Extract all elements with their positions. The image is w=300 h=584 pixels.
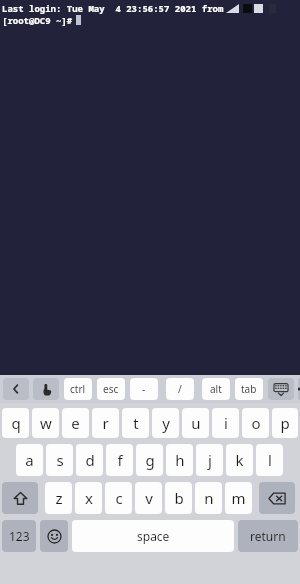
button[interactable]: q xyxy=(2,408,29,438)
staticText: space xyxy=(137,528,170,544)
staticText: s xyxy=(56,450,64,470)
staticText: z xyxy=(55,488,63,508)
button[interactable]: k xyxy=(226,444,253,476)
button[interactable]: Back xyxy=(3,378,29,400)
staticText: h xyxy=(175,450,185,470)
button[interactable]: x xyxy=(75,482,102,514)
staticText: alt xyxy=(210,382,222,396)
button[interactable]: Touch mode xyxy=(33,378,59,400)
staticText: ctrl xyxy=(70,382,86,396)
staticText: g xyxy=(145,450,155,470)
button[interactable]: i xyxy=(212,408,239,438)
button[interactable]: o xyxy=(242,408,269,438)
staticText: w xyxy=(40,413,52,433)
button[interactable]: space xyxy=(72,520,234,552)
button[interactable]: alt xyxy=(202,378,230,400)
button[interactable]: r xyxy=(92,408,119,438)
button[interactable]: f xyxy=(106,444,133,476)
button[interactable]: w xyxy=(32,408,59,438)
staticText: r xyxy=(102,413,109,433)
staticText: v xyxy=(145,488,153,508)
button[interactable]: / xyxy=(166,378,194,400)
staticText: - xyxy=(142,382,146,396)
button[interactable]: n xyxy=(195,482,222,514)
staticText: n xyxy=(204,488,214,508)
staticText: u xyxy=(191,413,201,433)
button[interactable]: Shift xyxy=(2,482,38,514)
staticText: d xyxy=(85,450,95,470)
button[interactable]: a xyxy=(16,444,43,476)
staticText: b xyxy=(174,488,184,508)
staticText: i xyxy=(224,413,228,433)
staticText: m xyxy=(231,488,246,508)
staticText: x xyxy=(85,488,93,508)
button[interactable]: d xyxy=(76,444,103,476)
button[interactable]: esc xyxy=(97,378,125,400)
staticText: [root@DC9 ~]# xyxy=(2,14,73,26)
button[interactable]: j xyxy=(196,444,223,476)
button[interactable]: g xyxy=(136,444,163,476)
staticText: esc xyxy=(103,382,119,396)
staticText: Last login: Tue May 4 23:56:57 2021 from xyxy=(2,2,224,14)
button[interactable]: y xyxy=(152,408,179,438)
button[interactable]: e xyxy=(62,408,89,438)
button[interactable]: Hide keyboard xyxy=(268,378,294,400)
button[interactable]: ctrl xyxy=(64,378,92,400)
staticText: j xyxy=(208,450,212,470)
staticText: / xyxy=(178,382,182,396)
button[interactable]: More options xyxy=(298,378,300,400)
staticText: t xyxy=(133,413,139,433)
button[interactable]: - xyxy=(130,378,158,400)
staticText: y xyxy=(162,413,170,433)
button[interactable]: t xyxy=(122,408,149,438)
staticText: 123 xyxy=(9,528,30,544)
staticText: l xyxy=(268,450,272,470)
button[interactable]: 123 xyxy=(2,520,36,552)
staticText: o xyxy=(251,413,261,433)
button[interactable]: u xyxy=(182,408,209,438)
staticText: a xyxy=(25,450,34,470)
button[interactable]: Emoji xyxy=(40,520,68,552)
button[interactable]: v xyxy=(135,482,162,514)
button[interactable]: z xyxy=(45,482,72,514)
button[interactable]: return xyxy=(238,520,298,552)
button[interactable]: p xyxy=(272,408,298,438)
staticText: return xyxy=(250,528,286,544)
staticText: p xyxy=(280,413,290,433)
staticText: f xyxy=(117,450,123,470)
button[interactable]: tab xyxy=(235,378,263,400)
button[interactable]: c xyxy=(105,482,132,514)
button[interactable]: b xyxy=(165,482,192,514)
staticText: c xyxy=(115,488,123,508)
staticText: k xyxy=(235,450,244,470)
button[interactable]: l xyxy=(256,444,283,476)
button[interactable]: m xyxy=(225,482,252,514)
button[interactable]: Backspace xyxy=(259,482,295,514)
staticText: tab xyxy=(241,382,257,396)
button[interactable]: s xyxy=(46,444,73,476)
button[interactable]: h xyxy=(166,444,193,476)
staticText: e xyxy=(71,413,80,433)
staticText: q xyxy=(11,413,21,433)
